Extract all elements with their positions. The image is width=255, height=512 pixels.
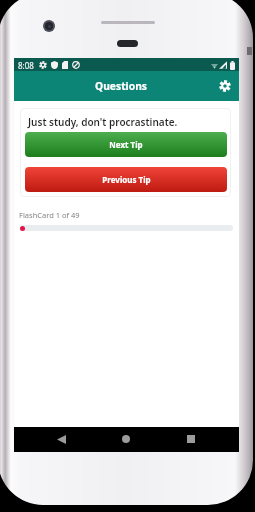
staticText: FlashCard 1 of 49 [19,210,80,220]
staticText: Previous Tip [102,174,151,185]
button[interactable]: Back [49,427,73,451]
button[interactable]: Home [114,427,138,451]
staticText: Just study, don't procrastinate. [28,115,178,129]
staticText: Next Tip [109,139,143,150]
button[interactable]: Previous Tip [25,167,227,192]
staticText: 8:08 [18,60,34,71]
button[interactable]: Settings [213,74,237,98]
staticText: Questions [95,79,147,93]
button[interactable]: Recent apps [179,427,203,451]
button[interactable]: Next Tip [25,132,227,157]
